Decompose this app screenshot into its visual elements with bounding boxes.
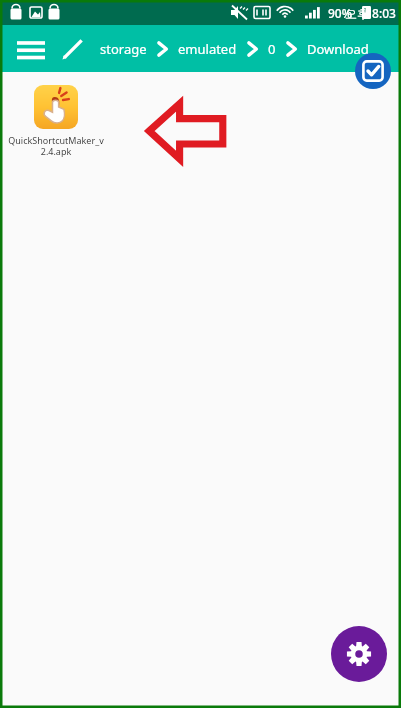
staticText: 오후 8:03 <box>345 5 396 21</box>
button[interactable]: Select all <box>355 53 391 89</box>
button[interactable]: Edit <box>54 30 92 68</box>
other: Annotation arrow <box>146 100 226 162</box>
staticText: 90% <box>328 5 352 21</box>
button[interactable]: Download <box>303 34 373 64</box>
button[interactable]: Menu <box>10 28 52 70</box>
button[interactable]: emulated <box>174 34 241 64</box>
button[interactable]: QuickShortcutMaker_v 2.4.apk <box>4 85 108 157</box>
staticText: QuickShortcutMaker_v 2.4.apk <box>4 134 108 157</box>
staticText: Download <box>307 40 369 58</box>
staticText: 0 <box>268 40 276 58</box>
button[interactable]: storage <box>96 34 151 64</box>
staticText: storage <box>100 40 147 58</box>
button[interactable]: 0 <box>264 34 280 64</box>
button[interactable]: Settings <box>331 626 387 682</box>
staticText: emulated <box>178 40 237 58</box>
